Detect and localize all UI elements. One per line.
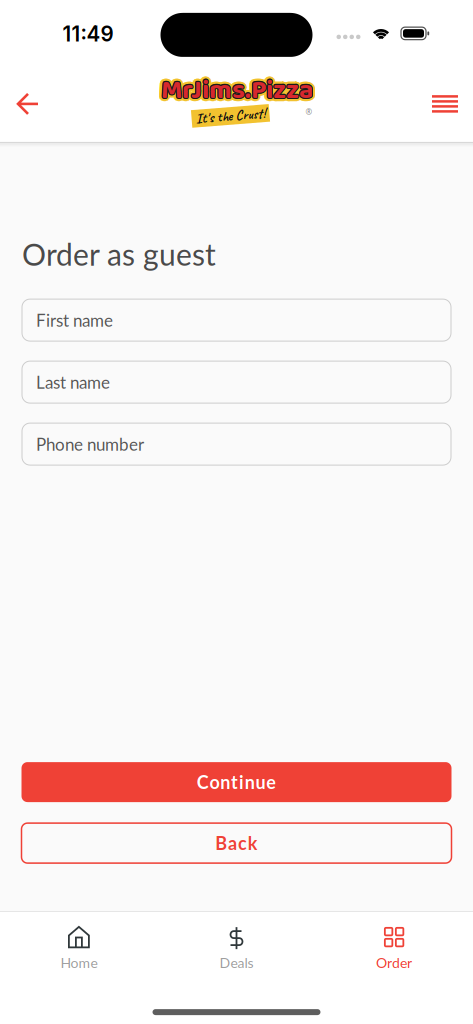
- staticText: MrJims.Pizza: [159, 72, 311, 115]
- staticText: Order: [376, 954, 412, 971]
- staticText: MrJims.Pizza: [159, 66, 311, 109]
- staticText: It's the Crust!: [195, 107, 265, 125]
- staticText: 11:49: [62, 21, 113, 46]
- staticText: MrJims.Pizza: [160, 70, 312, 113]
- staticText: MrJims.Pizza: [161, 68, 313, 111]
- staticText: MrJims.Pizza: [161, 72, 313, 115]
- button[interactable]: Back: [8, 84, 48, 124]
- staticText: ®: [305, 107, 312, 117]
- textField[interactable]: First name: [36, 305, 451, 335]
- staticText: MrJims.Pizza: [161, 69, 313, 112]
- staticText: MrJims.Pizza: [163, 66, 315, 109]
- textField[interactable]: Last name: [36, 367, 451, 397]
- button[interactable]: Continue: [21, 762, 451, 802]
- staticText: Last name: [36, 367, 147, 397]
- staticText: MrJims.Pizza: [164, 69, 316, 112]
- staticText: MrJims.Pizza: [160, 69, 312, 112]
- staticText: MrJims.Pizza: [162, 69, 314, 112]
- staticText: First name: [36, 310, 113, 330]
- staticText: Home: [60, 954, 97, 971]
- staticText: MrJims.Pizza: [162, 70, 314, 113]
- staticText: MrJims.Pizza: [161, 70, 313, 113]
- button[interactable]: Deals: [158, 926, 315, 971]
- staticText: MrJims.Pizza: [161, 65, 313, 109]
- staticText: MrJims.Pizza: [158, 67, 310, 110]
- staticText: MrJims.Pizza: [160, 68, 312, 111]
- staticText: MrJims.Pizza: [158, 70, 310, 114]
- staticText: MrJims.Pizza: [163, 72, 315, 115]
- staticText: MrJims.Pizza: [162, 68, 314, 111]
- staticText: Deals: [219, 954, 253, 971]
- staticText: MrJims.Pizza: [164, 70, 316, 114]
- button[interactable]: Order: [315, 926, 473, 971]
- button[interactable]: Back: [21, 823, 451, 863]
- staticText: Phone number: [36, 434, 144, 454]
- staticText: Back: [215, 832, 258, 854]
- staticText: MrJims.Pizza: [158, 69, 310, 112]
- textField[interactable]: Phone number: [36, 429, 451, 459]
- staticText: Order as guest: [22, 236, 216, 272]
- staticText: Last name: [36, 372, 110, 392]
- staticText: MrJims.Pizza: [164, 67, 316, 110]
- button[interactable]: Menu: [424, 87, 466, 121]
- staticText: First name: [36, 305, 149, 335]
- staticText: Continue: [197, 771, 276, 793]
- staticText: Phone number: [36, 429, 196, 459]
- button[interactable]: Home: [0, 926, 158, 971]
